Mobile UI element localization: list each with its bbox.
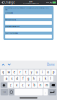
staticText: Page with significant (5, 26, 20, 27)
staticText: Manage your ID (5, 19, 16, 21)
button[interactable]: Next keyboard (9, 89, 14, 95)
staticText: b (33, 83, 35, 87)
button[interactable]: l (48, 76, 53, 81)
button[interactable]: Text field (5, 14, 52, 18)
staticText: Done (47, 63, 55, 66)
staticText: g (27, 77, 29, 80)
staticText: Change (4, 1, 15, 4)
staticText: e (13, 70, 15, 74)
staticText: z (10, 83, 11, 87)
button[interactable]: b (32, 82, 37, 88)
staticText: c (22, 83, 23, 87)
staticText: . (45, 90, 46, 94)
button[interactable]: Text field (5, 21, 52, 25)
staticText: 123 (3, 91, 6, 93)
button[interactable]: q (1, 70, 6, 75)
staticText: y (31, 70, 32, 74)
staticText: d (16, 77, 18, 80)
button[interactable]: s (9, 76, 14, 81)
button[interactable]: d (15, 76, 20, 81)
staticText: m (46, 83, 48, 87)
staticText: Text that is visible (5, 32, 18, 34)
button[interactable]: k (43, 76, 48, 81)
button[interactable]: v (26, 82, 31, 88)
staticText: s (11, 77, 12, 80)
staticText: h (33, 77, 35, 80)
staticText: x (16, 83, 17, 87)
button[interactable]: g (26, 76, 31, 81)
button[interactable]: u (34, 70, 39, 75)
staticText: n (40, 83, 42, 87)
staticText: j (39, 77, 40, 80)
button[interactable]: h (32, 76, 37, 81)
staticText: v (28, 83, 29, 87)
button[interactable]: r (18, 70, 23, 75)
button[interactable]: Modifier (50, 82, 56, 88)
button[interactable]: w (6, 70, 11, 75)
staticText: k (45, 77, 46, 80)
button[interactable]: Done (45, 63, 57, 66)
button[interactable]: y (29, 70, 34, 75)
button[interactable]: 123 (1, 89, 8, 95)
staticText: Sign in (29, 1, 33, 2)
staticText: u (36, 70, 38, 74)
button[interactable]: . (43, 89, 48, 95)
button[interactable]: c (20, 82, 25, 88)
button[interactable]: p (51, 70, 56, 75)
button[interactable]: m (44, 82, 49, 88)
button[interactable]: f (20, 76, 25, 81)
staticText: Google may use your info to personalise … (5, 7, 49, 11)
button[interactable]: z (8, 82, 13, 88)
button[interactable]: j (37, 76, 42, 81)
button[interactable]: a (4, 76, 9, 81)
staticText: t (25, 70, 26, 74)
staticText: o (47, 70, 49, 74)
button[interactable]: return (48, 89, 56, 95)
button[interactable]: Text field (5, 28, 52, 32)
button[interactable]: e (12, 70, 17, 75)
staticText: accounts.example.com (23, 2, 39, 4)
staticText: f (22, 77, 23, 80)
button[interactable]: n (38, 82, 43, 88)
staticText: Schedule ID (5, 12, 13, 14)
button[interactable]: Modifier (1, 82, 7, 88)
staticText: i (42, 70, 43, 74)
staticText: p (53, 70, 55, 74)
staticText: r (20, 70, 21, 74)
staticText: q (2, 70, 4, 74)
staticText: w (8, 70, 10, 74)
button[interactable]: Previous (0, 63, 6, 66)
button[interactable]: t (23, 70, 28, 75)
button[interactable]: i (40, 70, 45, 75)
staticText: l (50, 77, 51, 80)
button[interactable]: o (46, 70, 51, 75)
button[interactable]: Next (6, 63, 12, 66)
button[interactable]: x (14, 82, 19, 88)
staticText: a (6, 77, 7, 80)
button[interactable]: Change (0, 0, 15, 5)
